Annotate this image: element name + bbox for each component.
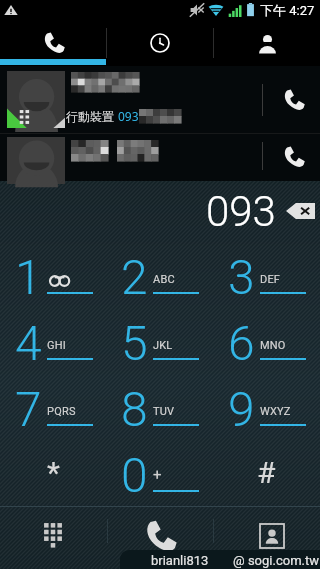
staticText: 7 [15,381,42,437]
staticText: DEF [260,273,281,286]
button[interactable]: Call [266,134,320,181]
staticText: GHI [47,339,66,352]
button[interactable]: 1 [0,243,106,309]
staticText: 8 [121,381,148,437]
button[interactable]: 0 [106,441,213,507]
button[interactable]: 6 [213,309,320,375]
staticText: 1 [15,249,42,305]
staticText: MNO [260,339,286,352]
button[interactable]: 行動裝置 [0,68,320,132]
button[interactable]: 5 [106,309,213,375]
button[interactable]: 4 [0,309,106,375]
staticText: @ sogi.com.tw [233,553,319,568]
staticText: 0 [121,447,148,503]
button[interactable]: Backspace [286,203,315,219]
staticText: # [257,455,276,490]
staticText: 093 [118,108,139,124]
staticText: 2 [121,249,148,305]
staticText: 6 [228,315,255,371]
button[interactable]: Call history [107,20,213,66]
button[interactable]: Phone [0,20,106,66]
staticText: brianli813 [151,553,209,568]
staticText: ABC [153,273,175,286]
button[interactable]: 9 [213,375,320,441]
staticText: * [47,455,60,490]
staticText: JKL [153,339,173,352]
staticText: WXYZ [260,405,291,418]
button[interactable]: 8 [106,375,213,441]
staticText: 5 [121,315,148,371]
button[interactable]: Contacts [248,515,294,553]
button[interactable]: # [213,441,320,507]
button[interactable]: * [0,441,106,507]
staticText: PQRS [47,405,76,418]
staticText: 9 [228,381,255,437]
button[interactable]: Call [0,134,320,181]
button[interactable]: Call [266,68,320,132]
button[interactable]: 3 [213,243,320,309]
button[interactable]: Call [136,514,184,556]
button[interactable]: Dialpad [30,515,76,553]
staticText: TUV [153,405,175,418]
staticText: 行動裝置 [66,108,118,124]
button[interactable]: 7 [0,375,106,441]
button[interactable]: 2 [106,243,213,309]
button[interactable]: Contacts [214,20,320,66]
staticText: 4 [15,315,42,371]
staticText: 093 [206,187,276,236]
staticText: 下午 4:27 [260,2,315,18]
staticText: 3 [228,249,255,305]
staticText: + [153,466,162,484]
